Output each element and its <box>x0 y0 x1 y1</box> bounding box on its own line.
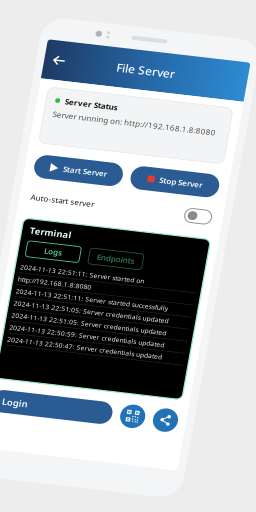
staticText: 2024-11-13 22:51:11: Server started on <box>21 262 146 271</box>
button[interactable]: Stop Server <box>114 146 203 171</box>
staticText: 2024-11-13 22:51:05: Server credentials … <box>21 314 177 323</box>
staticText: 2024-11-13 22:50:47: Server credentials … <box>21 340 177 349</box>
button[interactable]: Login <box>16 398 138 422</box>
staticText: Endpoints <box>95 242 133 252</box>
staticText: Terminal <box>24 221 66 233</box>
staticText: http://192.168.1.8:8080 <box>21 275 95 284</box>
staticText: 2024-11-13 22:51:11: Server started succ… <box>21 288 174 297</box>
button[interactable]: Logs <box>24 238 78 255</box>
staticText: Login <box>27 404 53 417</box>
button[interactable]: Auto-start server <box>8 181 212 203</box>
button[interactable]: Share <box>179 398 204 423</box>
button[interactable]: Endpoints <box>87 238 141 255</box>
button[interactable]: Show QR code <box>146 398 171 423</box>
button[interactable]: Start Server <box>17 146 106 171</box>
staticText: Server Status <box>36 82 89 93</box>
staticText: Stop Server <box>143 153 186 164</box>
staticText: Auto-start server <box>19 187 83 197</box>
staticText: Server running on: http://192.168.1.8:80… <box>26 97 190 107</box>
staticText: Start Server <box>46 153 90 164</box>
staticText: 2024-11-13 22:50:59: Server credentials … <box>21 327 177 336</box>
staticText: File Server <box>80 37 139 53</box>
staticText: 2024-11-13 22:51:05: Server credentials … <box>21 301 177 310</box>
staticText: Logs <box>42 242 60 252</box>
